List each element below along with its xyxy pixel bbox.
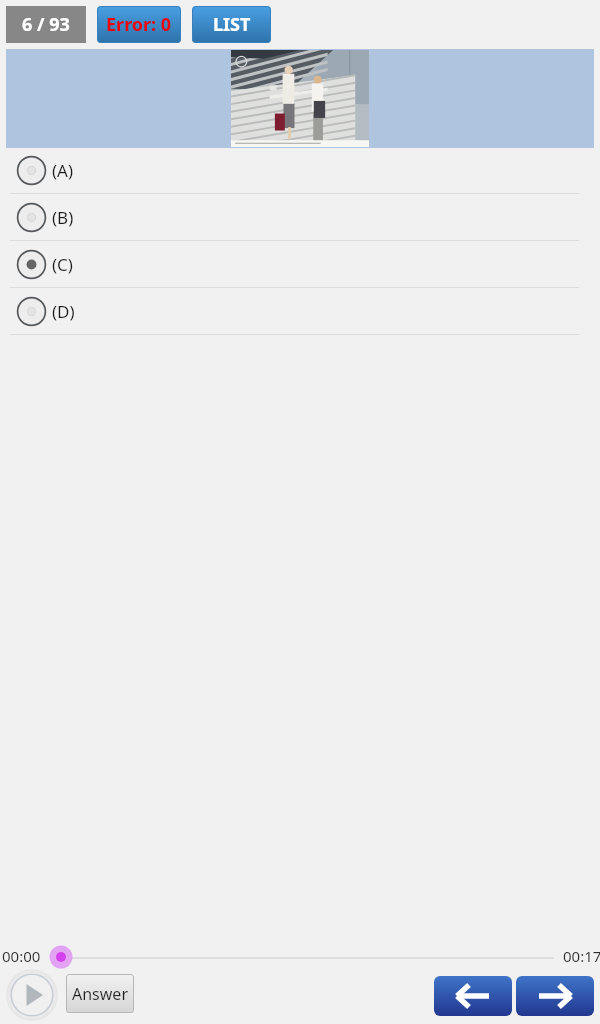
- button[interactable]: (B): [0, 194, 600, 240]
- button[interactable]: (D): [0, 288, 600, 334]
- staticText: (C): [52, 253, 73, 276]
- button[interactable]: Seek: [47, 943, 75, 971]
- staticText: (B): [52, 206, 74, 229]
- button[interactable]: (C): [0, 241, 600, 287]
- button[interactable]: (A): [0, 148, 600, 193]
- staticText: Answer: [72, 983, 128, 1005]
- button[interactable]: LIST: [192, 6, 271, 43]
- button[interactable]: Previous: [434, 976, 512, 1016]
- button[interactable]: Answer: [66, 974, 134, 1013]
- button[interactable]: Error: 0: [97, 6, 181, 43]
- staticText: 6 / 93: [22, 12, 70, 37]
- staticText: Error: 0: [106, 12, 172, 37]
- staticText: 00:17: [563, 946, 600, 966]
- button[interactable]: Next: [516, 976, 594, 1016]
- staticText: LIST: [213, 12, 251, 37]
- button[interactable]: Play: [6, 969, 58, 1021]
- staticText: (A): [52, 159, 74, 182]
- staticText: 00:00: [2, 946, 41, 966]
- button[interactable]: 6 / 93: [6, 6, 86, 43]
- staticText: (D): [52, 300, 75, 323]
